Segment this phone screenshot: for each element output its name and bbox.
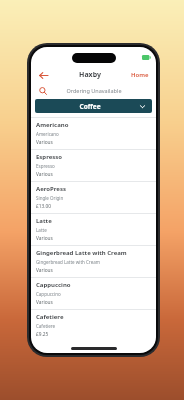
staticText: Americano (36, 131, 59, 137)
staticText: Cafetiere (36, 323, 56, 329)
staticText: Various (36, 139, 53, 146)
staticText: Latte (36, 227, 47, 233)
staticText: AeroPress (36, 185, 66, 193)
staticText: Cappuccino (36, 291, 61, 297)
staticText: Gingerbread Latte with Cream (36, 249, 127, 257)
button[interactable]: AeroPress (31, 182, 156, 213)
staticText: Various (36, 171, 53, 178)
button[interactable]: Search (36, 84, 49, 97)
staticText: Cafetiere (36, 313, 64, 321)
staticText: Various (36, 299, 53, 306)
staticText: Coffee (79, 102, 101, 111)
button[interactable]: Latte (31, 214, 156, 245)
button[interactable]: Home (129, 70, 151, 80)
staticText: Single Origin (36, 195, 64, 201)
button[interactable]: Gingerbread Latte with Cream (31, 246, 156, 277)
button[interactable]: Espresso (31, 150, 156, 181)
staticText: £9.25 (36, 331, 49, 338)
staticText: Various (36, 235, 53, 242)
staticText: Ordering Unavailable (66, 87, 122, 94)
staticText: Espresso (36, 153, 63, 161)
staticText: Espresso (36, 163, 55, 169)
staticText: Various (36, 267, 53, 274)
staticText: Haxby (79, 70, 101, 80)
button[interactable]: Back (36, 68, 50, 82)
staticText: Americano (36, 121, 69, 129)
staticText: Latte (36, 217, 52, 225)
staticText: Gingerbread Latte with Cream (36, 259, 100, 265)
button[interactable]: Cafetiere (31, 310, 156, 341)
button[interactable]: Coffee (35, 99, 152, 113)
staticText: £13.00 (36, 203, 52, 210)
staticText: Home (131, 71, 149, 79)
button[interactable]: Cappuccino (31, 278, 156, 309)
button[interactable]: Americano (31, 118, 156, 149)
staticText: Cappuccino (36, 281, 71, 289)
